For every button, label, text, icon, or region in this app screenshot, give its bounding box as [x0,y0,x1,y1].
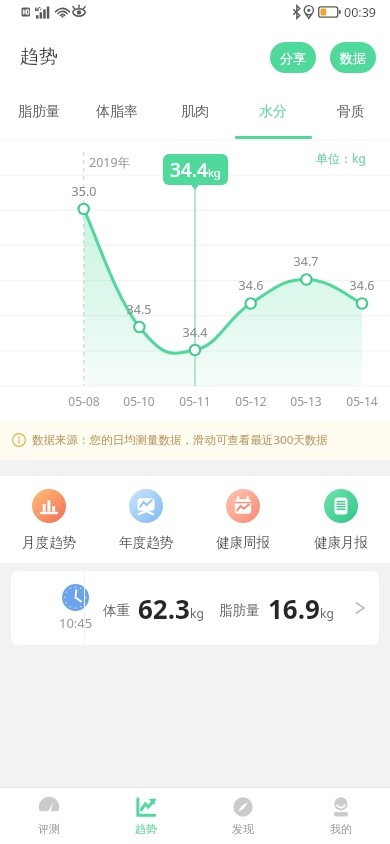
staticText: 05-12 [229,393,273,409]
staticText: 骨质 [337,103,365,121]
button[interactable]: 健康月报 [292,476,390,563]
staticText: 数据来源：您的日均测量数据，滑动可查看最近300天数据 [32,432,328,448]
button[interactable]: 趋势 [97,788,194,844]
staticText: 34.5 [119,301,159,318]
staticText: 脂肪量 [18,103,60,121]
button[interactable]: 肌肉 [156,90,234,140]
staticText: 单位：kg [316,150,366,166]
staticText: 05-13 [284,393,328,409]
staticText: 脂肪量 [219,602,260,619]
button[interactable]: 分享 [270,42,316,73]
staticText: 评测 [38,822,60,836]
staticText: 00:39 [344,4,376,21]
staticText: 34.4 [175,324,215,341]
staticText: 年度趋势 [119,534,173,551]
staticText: 62.3 [138,591,190,626]
button[interactable]: 脂肪量 [0,90,78,140]
staticText: 34.7 [286,253,326,270]
button[interactable]: 年度趋势 [97,476,194,563]
staticText: 肌肉 [181,103,209,121]
staticText: 发现 [232,822,254,836]
staticText: 34.6 [231,277,271,294]
staticText: 05-08 [62,393,106,409]
staticText: 34.4 [170,157,208,183]
staticText: 趋势 [135,822,157,836]
staticText: 健康周报 [216,534,270,551]
button[interactable]: 水分 [234,90,312,140]
staticText: kg [320,605,334,621]
button[interactable]: 10:45 [11,571,379,645]
button[interactable]: 体脂率 [78,90,156,140]
staticText: 16.9 [268,591,320,626]
button[interactable]: 我的 [292,788,390,844]
staticText: 月度趋势 [22,534,76,551]
staticText: 05-11 [173,393,217,409]
staticText: 05-10 [117,393,161,409]
staticText: 体重 [103,602,130,619]
staticText: 05-14 [340,393,384,409]
staticText: 分享 [280,50,306,66]
staticText: 34.6 [342,277,382,294]
button[interactable]: 健康周报 [194,476,292,563]
staticText: 数据 [340,50,366,66]
staticText: 2019年 [89,154,131,171]
button[interactable]: 发现 [194,788,292,844]
button[interactable]: 骨质 [312,90,390,140]
staticText: 10:45 [59,614,93,632]
staticText: 健康月报 [314,534,368,551]
staticText: 我的 [330,822,352,836]
staticText: 体脂率 [96,103,138,121]
staticText: 趋势 [20,45,58,69]
button[interactable]: 评测 [0,788,97,844]
staticText: 35.0 [64,183,104,200]
button[interactable]: 月度趋势 [0,476,97,563]
staticText: kg [208,165,221,180]
staticText: kg [190,605,204,621]
staticText: 水分 [259,103,287,121]
button[interactable]: 数据 [330,42,376,73]
